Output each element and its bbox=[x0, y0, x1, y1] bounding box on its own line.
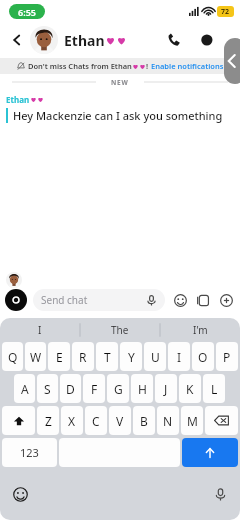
staticText: F bbox=[91, 381, 98, 397]
staticText: W bbox=[30, 349, 42, 365]
staticText: The bbox=[111, 323, 129, 337]
staticText: G bbox=[114, 381, 123, 397]
button[interactable]: Voice input bbox=[210, 484, 230, 504]
staticText: I'm bbox=[193, 323, 208, 337]
staticText: Send chat bbox=[41, 293, 88, 307]
staticText: 6:55 bbox=[18, 6, 36, 18]
button[interactable]: Back bbox=[6, 29, 28, 51]
button[interactable]: Y bbox=[120, 342, 142, 371]
button[interactable]: W bbox=[25, 342, 46, 371]
staticText: Hey Mackenzie can I ask you something bbox=[13, 108, 223, 123]
staticText: P bbox=[223, 349, 231, 365]
button[interactable]: Send bbox=[182, 438, 238, 467]
button[interactable]: Ethan bbox=[64, 31, 127, 50]
button[interactable]: Q bbox=[2, 342, 23, 371]
staticText: B bbox=[140, 413, 148, 429]
staticText: Enable notifications bbox=[151, 61, 224, 71]
staticText: T bbox=[104, 349, 111, 365]
staticText: X bbox=[68, 413, 76, 429]
button[interactable]: I bbox=[168, 342, 190, 371]
staticText: V bbox=[116, 413, 124, 429]
staticText: Ethan bbox=[6, 94, 30, 105]
button[interactable]: Stickers bbox=[172, 292, 188, 308]
button[interactable]: D bbox=[60, 374, 81, 403]
staticText: 123 bbox=[20, 445, 39, 460]
button[interactable]: Enable notifications bbox=[151, 61, 224, 71]
button[interactable]: H bbox=[131, 374, 153, 403]
button[interactable]: C bbox=[85, 406, 107, 435]
staticText: C bbox=[92, 413, 100, 429]
staticText: S bbox=[44, 381, 51, 397]
button[interactable]: T bbox=[96, 342, 118, 371]
staticText: I bbox=[38, 323, 42, 337]
staticText: O bbox=[198, 349, 208, 365]
staticText: M bbox=[187, 413, 198, 429]
button[interactable]: B bbox=[133, 406, 155, 435]
button[interactable]: V bbox=[109, 406, 131, 435]
button[interactable]: The bbox=[80, 318, 160, 342]
button[interactable]: I'm bbox=[160, 318, 240, 342]
button[interactable]: J bbox=[155, 374, 177, 403]
button[interactable]: N bbox=[157, 406, 179, 435]
staticText: 72 bbox=[221, 7, 230, 17]
button[interactable]: X bbox=[61, 406, 83, 435]
staticText: H bbox=[138, 381, 147, 397]
staticText: L bbox=[211, 381, 218, 397]
button[interactable]: O bbox=[192, 342, 214, 371]
button[interactable]: F bbox=[83, 374, 105, 403]
staticText: Ethan bbox=[64, 31, 105, 50]
staticText: NEW bbox=[111, 78, 129, 87]
button[interactable]: P bbox=[216, 342, 238, 371]
button[interactable]: M bbox=[181, 406, 203, 435]
button[interactable]: R bbox=[72, 342, 94, 371]
button[interactable]: E bbox=[48, 342, 70, 371]
button[interactable]: Video call bbox=[196, 28, 220, 52]
button[interactable]: I bbox=[0, 318, 80, 342]
button[interactable]: Call bbox=[162, 28, 186, 52]
staticText: Y bbox=[128, 349, 135, 365]
button[interactable]: 123 bbox=[2, 438, 57, 467]
button[interactable]: S bbox=[37, 374, 58, 403]
staticText: Z bbox=[45, 413, 52, 429]
staticText: A bbox=[21, 381, 29, 397]
button[interactable]: Hey Mackenzie can I ask you something bbox=[6, 108, 223, 123]
button[interactable]: G bbox=[107, 374, 129, 403]
button[interactable]: Emoji bbox=[10, 484, 30, 504]
staticText: Q bbox=[8, 349, 18, 365]
staticText: R bbox=[79, 349, 87, 365]
button[interactable]: Bitmoji bbox=[195, 292, 211, 308]
button[interactable]: Backspace bbox=[205, 406, 238, 435]
button[interactable]: Add bbox=[218, 292, 234, 308]
staticText: ! bbox=[146, 61, 149, 71]
staticText: D bbox=[66, 381, 75, 397]
button[interactable]: U bbox=[144, 342, 166, 371]
staticText: J bbox=[164, 381, 168, 397]
staticText: Don't miss Chats from Ethan bbox=[28, 61, 132, 71]
staticText: K bbox=[186, 381, 194, 397]
staticText: E bbox=[56, 349, 63, 365]
button[interactable]: Send chat bbox=[33, 289, 165, 311]
button[interactable]: Z bbox=[37, 406, 59, 435]
button[interactable]: Camera bbox=[5, 289, 27, 311]
staticText: N bbox=[163, 413, 173, 429]
button[interactable]: Shift bbox=[2, 406, 35, 435]
staticText: I bbox=[177, 349, 182, 365]
staticText: U bbox=[151, 349, 160, 365]
button[interactable]: L bbox=[203, 374, 225, 403]
button[interactable]: Open panel bbox=[224, 38, 240, 84]
button[interactable]: A bbox=[14, 374, 35, 403]
button[interactable]: K bbox=[179, 374, 201, 403]
